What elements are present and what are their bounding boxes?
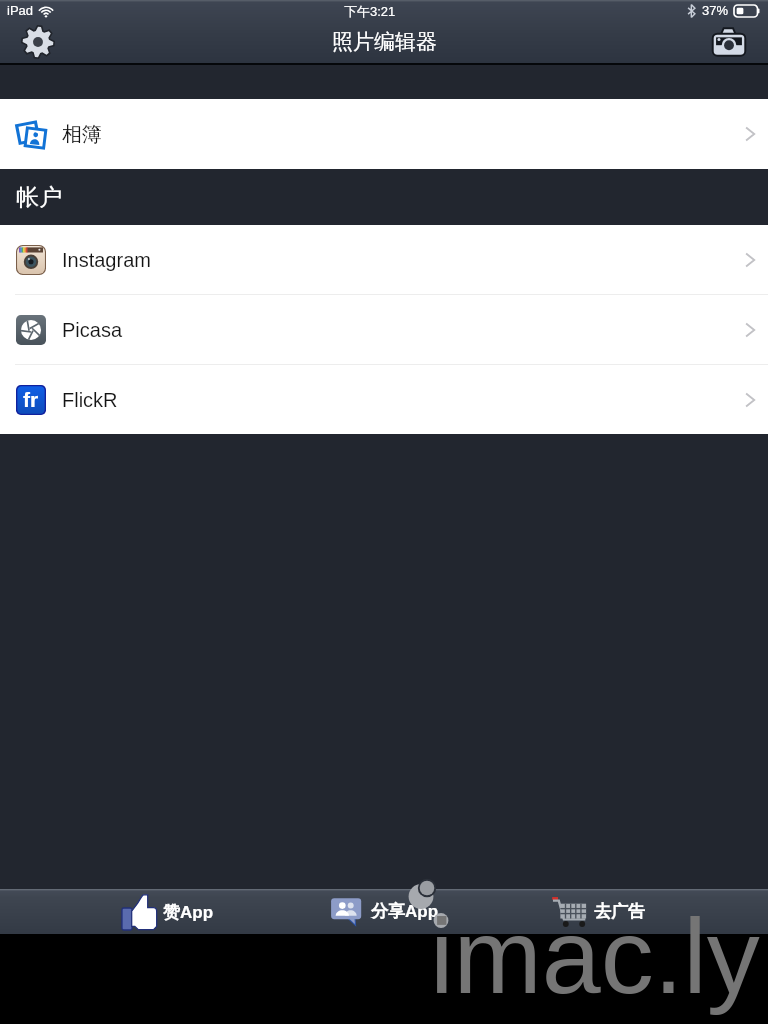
button[interactable]: Picasa bbox=[0, 295, 768, 364]
button[interactable]: Camera bbox=[712, 26, 746, 58]
staticText: 相簿 bbox=[62, 122, 102, 147]
staticText: Instagram bbox=[62, 249, 151, 271]
button[interactable]: 赞App bbox=[116, 889, 220, 934]
staticText: fr bbox=[23, 388, 39, 411]
button[interactable]: 去广告 bbox=[547, 889, 651, 934]
staticText: Picasa bbox=[62, 319, 123, 341]
button[interactable]: 相簿 bbox=[0, 99, 768, 169]
button[interactable]: 分享App bbox=[325, 889, 445, 934]
button[interactable]: Instagram bbox=[0, 225, 768, 294]
button[interactable]: Settings bbox=[22, 26, 54, 58]
staticText: 赞App bbox=[163, 902, 214, 923]
staticText: 分享App bbox=[371, 901, 439, 922]
button[interactable]: fr bbox=[0, 365, 768, 434]
staticText: 照片编辑器 bbox=[332, 29, 437, 55]
staticText: 37% bbox=[702, 3, 729, 18]
staticText: 去广告 bbox=[594, 901, 645, 922]
staticText: iPad bbox=[7, 3, 34, 18]
staticText: 帐户 bbox=[16, 183, 62, 212]
staticText: 下午3:21 bbox=[344, 3, 396, 19]
staticText: imac.ly bbox=[430, 897, 760, 1015]
staticText: FlickR bbox=[62, 389, 118, 411]
